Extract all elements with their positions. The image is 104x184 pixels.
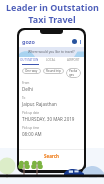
button[interactable]: OUTSTATION bbox=[19, 58, 40, 62]
button[interactable]: Profile bbox=[72, 39, 77, 44]
button[interactable]: Search bbox=[19, 150, 84, 162]
staticText: Where would you like to travel? bbox=[28, 50, 75, 54]
button[interactable]: One way bbox=[22, 68, 41, 74]
button[interactable]: AIRPORT bbox=[62, 58, 84, 62]
staticText: Jaipur, Rajasthan bbox=[22, 101, 57, 107]
staticText: Leader in Outstation bbox=[6, 1, 99, 13]
button[interactable]: To bbox=[22, 96, 81, 107]
staticText: From bbox=[22, 81, 30, 85]
button[interactable]: From bbox=[22, 81, 81, 92]
staticText: Round trip bbox=[46, 69, 61, 73]
staticText: 08:00 AM bbox=[22, 131, 42, 137]
staticText: Search bbox=[44, 153, 60, 159]
staticText: Pick up date bbox=[22, 111, 40, 115]
staticText: Taxi Travel bbox=[28, 13, 76, 25]
staticText: Packages bbox=[69, 69, 78, 77]
staticText: AIRPORT bbox=[67, 58, 80, 62]
staticText: THURSDAY, 30 MAR 2019 bbox=[22, 116, 75, 122]
staticText: Delhi bbox=[22, 86, 33, 92]
button[interactable]: Round trip bbox=[43, 68, 64, 74]
button[interactable]: LOCAL bbox=[40, 58, 62, 62]
staticText: One way bbox=[25, 69, 38, 73]
staticText: OUTSTATION bbox=[20, 58, 39, 62]
button[interactable]: Where would you like to travel? bbox=[19, 47, 84, 57]
button[interactable]: More options bbox=[79, 39, 82, 44]
button[interactable]: Pick up time bbox=[22, 126, 81, 137]
button[interactable]: Pick up date bbox=[22, 111, 81, 122]
button[interactable]: Packages bbox=[66, 68, 81, 78]
staticText: To bbox=[22, 96, 26, 100]
staticText: gozo bbox=[22, 38, 36, 45]
staticText: Pick up time bbox=[22, 126, 40, 130]
staticText: LOCAL bbox=[46, 58, 56, 62]
